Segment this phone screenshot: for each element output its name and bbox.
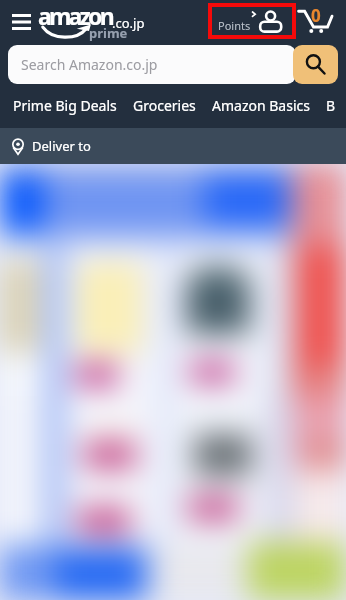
button[interactable]: Amazon Basics bbox=[204, 90, 318, 120]
staticText: Points bbox=[218, 18, 251, 33]
button[interactable]: Best Sellers bbox=[318, 90, 346, 120]
staticText: Search Amazon.co.jp bbox=[21, 55, 158, 74]
button[interactable]: Menu bbox=[6, 8, 36, 36]
staticText: prime bbox=[89, 24, 128, 42]
staticText: Deliver to bbox=[32, 137, 91, 155]
button[interactable]: Search Amazon.co.jp bbox=[8, 45, 296, 84]
button[interactable]: Groceries bbox=[125, 90, 204, 120]
staticText: 0 bbox=[311, 4, 321, 27]
button[interactable]: Points and account bbox=[208, 3, 296, 39]
staticText: amazon bbox=[38, 0, 112, 31]
staticText: Groceries bbox=[133, 96, 196, 115]
staticText: Best Sellers bbox=[326, 96, 338, 115]
staticText: Prime Big Deals bbox=[13, 96, 117, 115]
staticText: Amazon Basics bbox=[212, 96, 310, 115]
button[interactable]: Search bbox=[293, 45, 338, 84]
staticText: .co.jp bbox=[112, 14, 145, 32]
button[interactable]: Deliver to bbox=[0, 128, 346, 164]
button[interactable]: Prime Big Deals bbox=[5, 90, 125, 120]
button[interactable]: Cart bbox=[296, 0, 340, 40]
